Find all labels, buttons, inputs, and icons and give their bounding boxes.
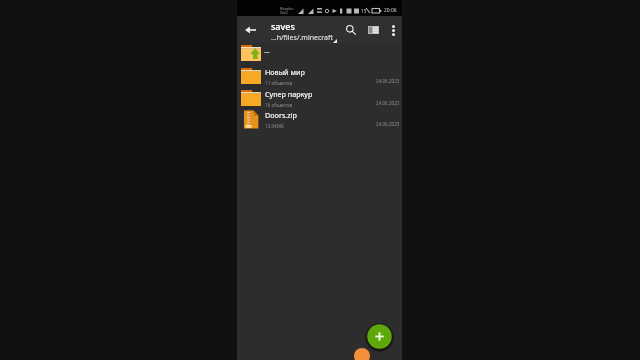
button[interactable]: View mode: [362, 19, 384, 41]
button[interactable]: Супер паркур: [237, 87, 402, 109]
button[interactable]: ...: [237, 43, 402, 65]
staticText: 13.04Мб: [265, 123, 284, 129]
button[interactable]: Search: [340, 19, 362, 41]
staticText: Новый мир: [265, 67, 305, 77]
staticText: 16 объектов: [265, 102, 293, 108]
button[interactable]: Back: [241, 20, 260, 39]
staticText: ...: [264, 46, 270, 56]
button[interactable]: Add: [364, 321, 395, 352]
button[interactable]: Новый мир: [237, 65, 402, 87]
button[interactable]: Action: [354, 348, 370, 360]
staticText: saves: [271, 20, 295, 32]
staticText: ...h/files/.minecraft: [271, 33, 333, 43]
staticText: 11 объектов: [265, 80, 293, 86]
staticText: 24.06.2023: [376, 78, 400, 84]
staticText: 15: [361, 8, 367, 14]
staticText: Tele2: [280, 11, 288, 15]
staticText: Супер паркур: [265, 89, 313, 99]
staticText: 24.06.2023: [376, 121, 400, 127]
staticText: 24.06.2023: [376, 100, 400, 106]
staticText: 20:06: [384, 7, 397, 14]
button[interactable]: Doors.zip: [237, 108, 402, 130]
button[interactable]: More options: [384, 21, 402, 39]
staticText: Megafon: [280, 7, 294, 11]
staticText: Doors.zip: [265, 110, 297, 120]
